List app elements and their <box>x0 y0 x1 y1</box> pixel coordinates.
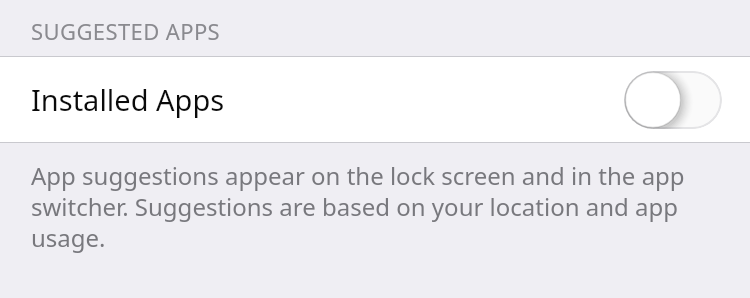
staticText: App suggestions appear on the lock scree… <box>31 161 695 254</box>
staticText: SUGGESTED APPS <box>31 16 221 46</box>
button[interactable]: Installed Apps toggle, off <box>624 71 722 129</box>
button[interactable]: Installed Apps <box>0 57 750 142</box>
staticText: Installed Apps <box>31 80 225 119</box>
